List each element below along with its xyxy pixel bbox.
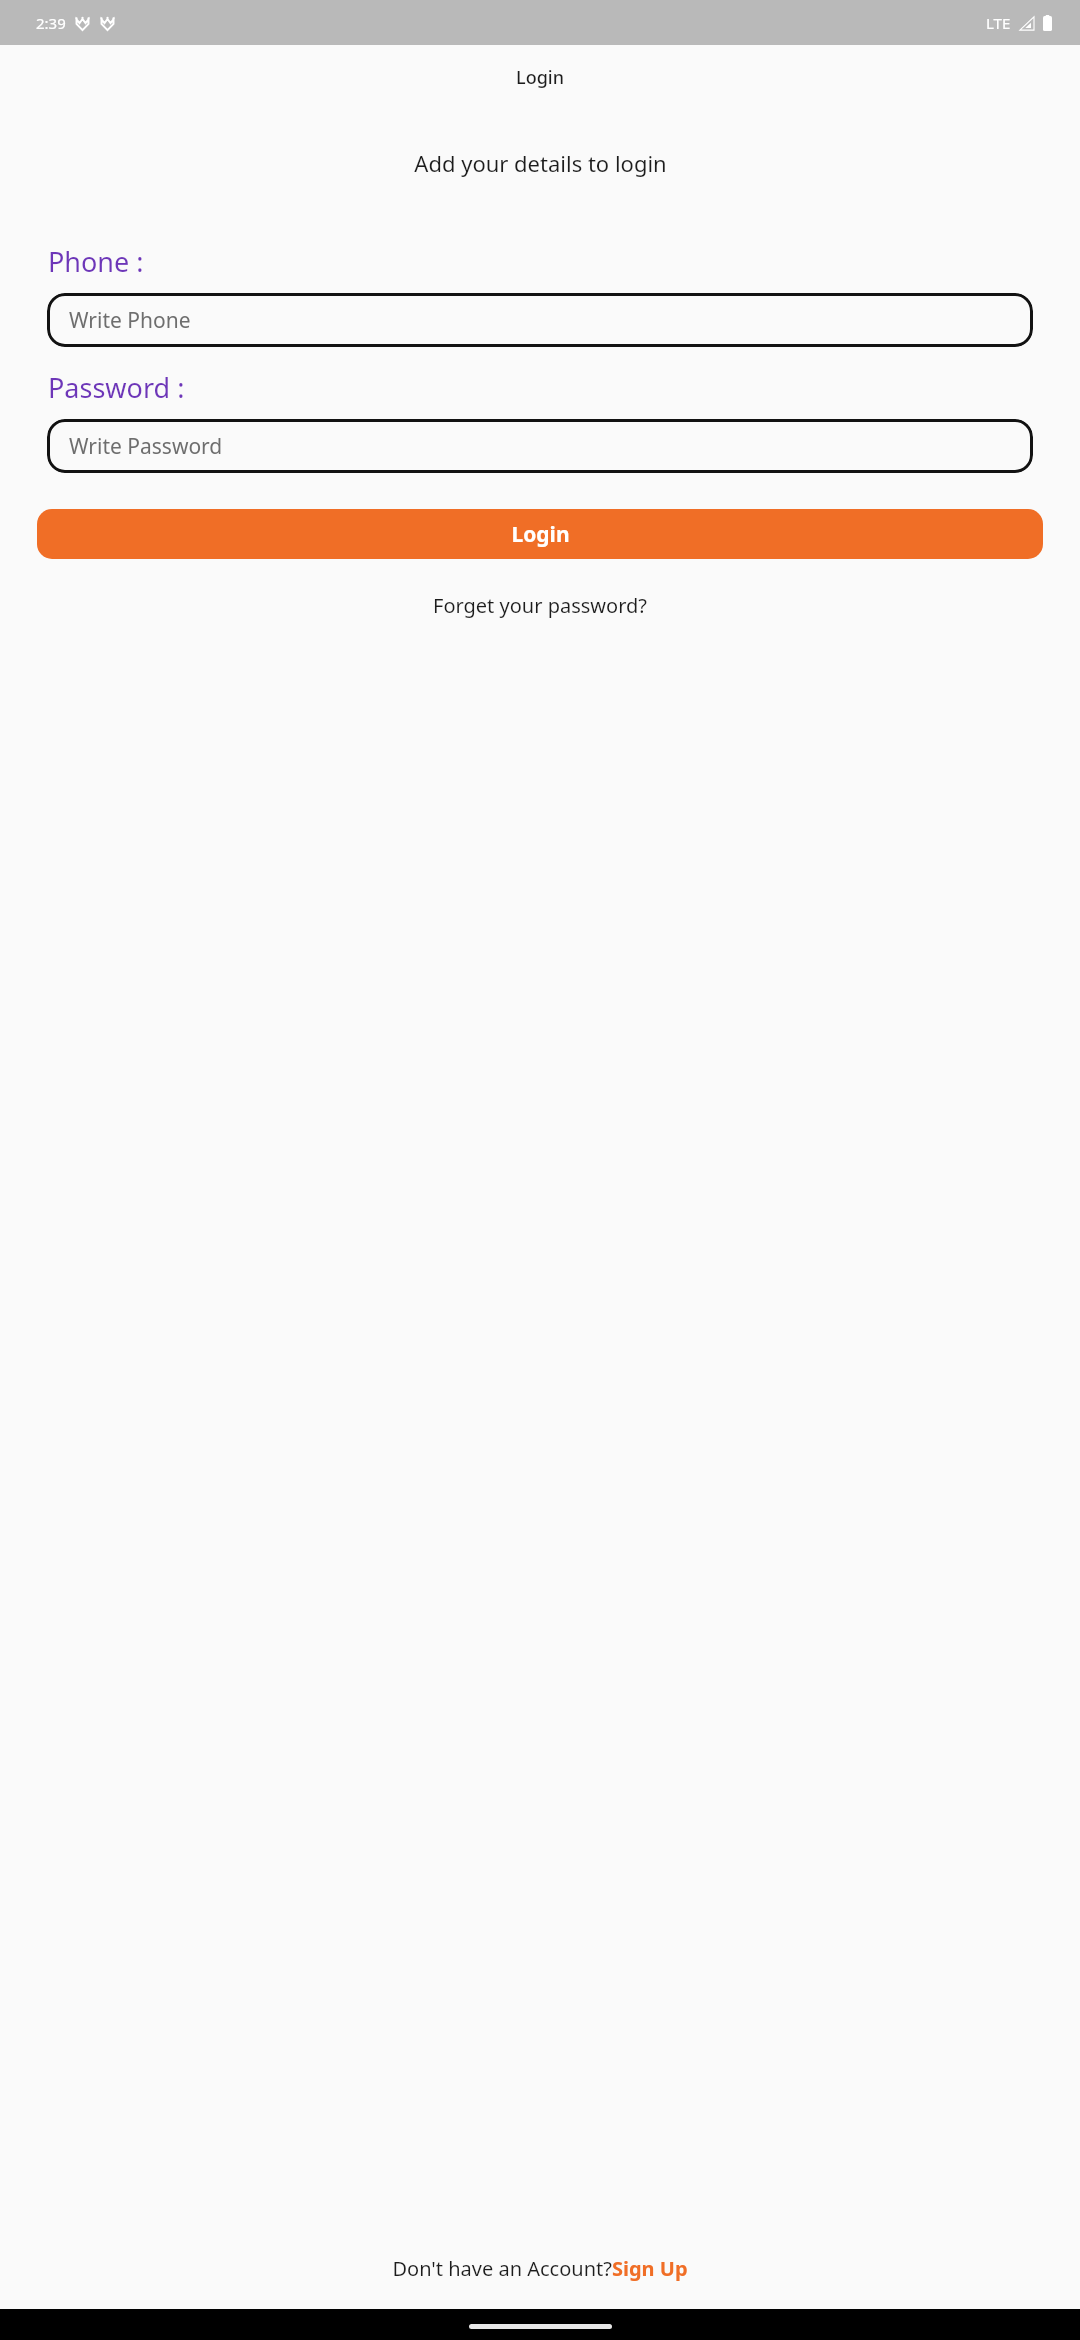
button[interactable]: Login [37, 509, 1043, 559]
staticText: Password : [48, 369, 185, 406]
staticText: Write Password [69, 432, 223, 461]
staticText: Login [511, 520, 570, 549]
staticText: LTE [986, 13, 1011, 33]
button[interactable]: Write Password [47, 419, 1033, 473]
staticText: Add your details to login [414, 148, 667, 178]
staticText: Write Phone [69, 306, 191, 335]
staticText: 2:39 [36, 13, 66, 33]
staticText: Phone : [48, 243, 144, 280]
staticText: Login [516, 65, 564, 90]
button[interactable]: Don't have an Account?Sign Up [382, 2249, 698, 2288]
button[interactable]: Forget your password? [421, 586, 659, 625]
button[interactable]: Write Phone [47, 293, 1033, 347]
